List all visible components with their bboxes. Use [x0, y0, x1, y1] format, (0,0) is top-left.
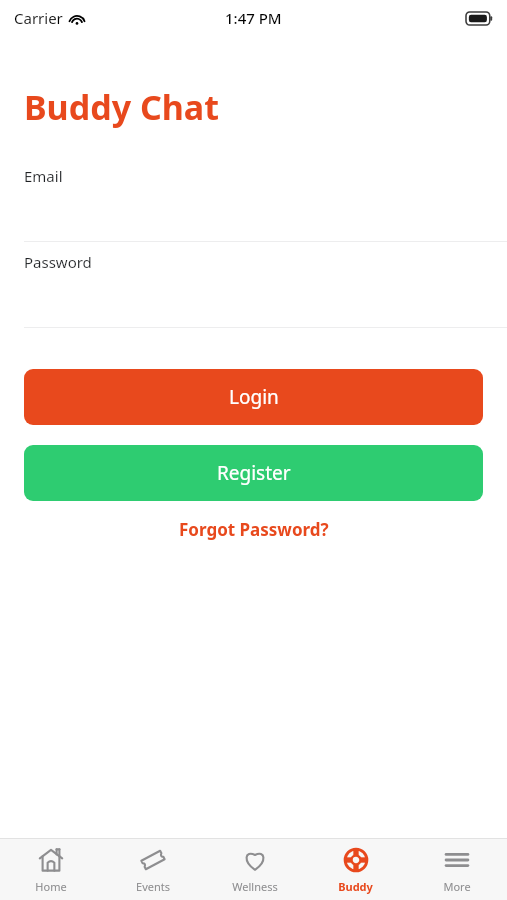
- staticText: Events: [136, 879, 170, 894]
- staticText: Forgot Password?: [179, 518, 329, 541]
- button[interactable]: Login: [24, 369, 483, 425]
- button[interactable]: Wellness: [204, 839, 305, 900]
- button[interactable]: More: [406, 839, 507, 900]
- staticText: Email: [24, 166, 63, 186]
- staticText: Carrier: [14, 8, 63, 28]
- button[interactable]: Home: [0, 839, 102, 900]
- button[interactable]: Buddy: [305, 839, 406, 900]
- button[interactable]: Forgot Password?: [0, 514, 507, 545]
- staticText: Wellness: [232, 879, 278, 894]
- button[interactable]: Password: [0, 242, 507, 327]
- staticText: Login: [229, 384, 279, 410]
- staticText: Home: [35, 879, 67, 894]
- staticText: Register: [217, 460, 291, 486]
- staticText: Buddy Chat: [24, 84, 219, 130]
- staticText: More: [443, 879, 471, 894]
- staticText: Password: [24, 252, 92, 272]
- staticText: Buddy: [338, 879, 373, 894]
- button[interactable]: Email: [0, 156, 507, 241]
- button[interactable]: Events: [102, 839, 204, 900]
- button[interactable]: Register: [24, 445, 483, 501]
- staticText: 1:47 PM: [225, 8, 282, 28]
